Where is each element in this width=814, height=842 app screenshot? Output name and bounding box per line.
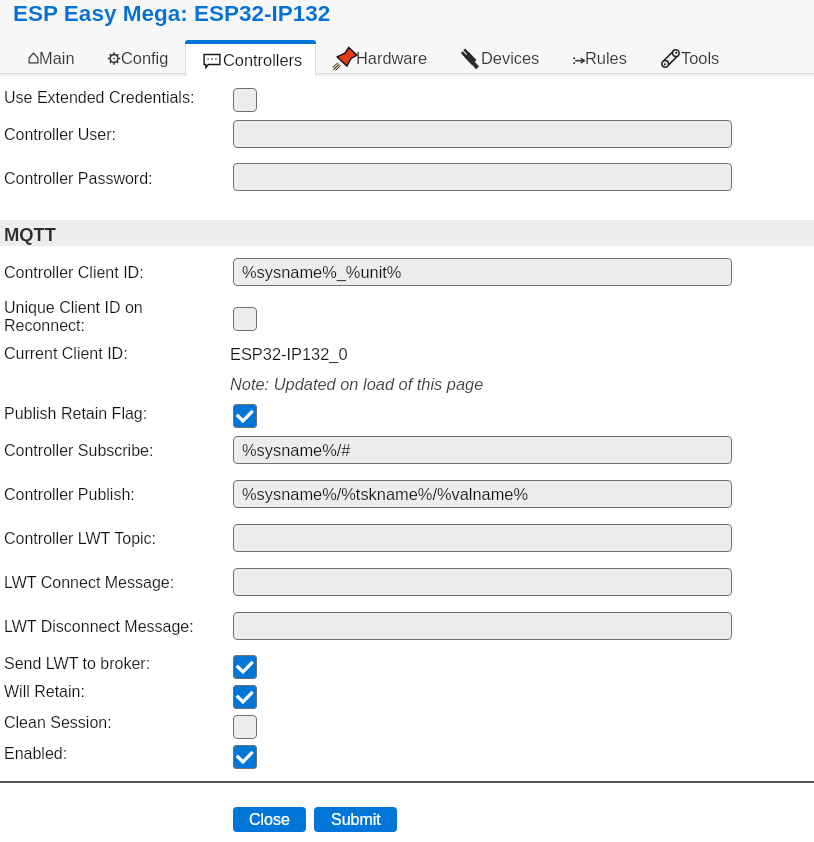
staticText: Send LWT to broker: (4, 655, 151, 673)
button[interactable]: %sysname%/%tskname%/%valname% (233, 480, 732, 508)
staticText: ESP Easy Mega: ESP32-IP132 (13, 1, 331, 26)
button[interactable]: Send LWT to broker (233, 655, 257, 679)
staticText: MQTT (4, 224, 57, 245)
staticText: Clean Session: (4, 714, 112, 732)
staticText: Will Retain: (4, 683, 85, 701)
staticText: Publish Retain Flag: (4, 405, 148, 423)
staticText: Current Client ID: (4, 345, 128, 363)
button[interactable]: Use Extended Credentials (233, 88, 257, 112)
button[interactable] (233, 120, 732, 148)
staticText: Submit (331, 811, 381, 829)
staticText: Enabled: (4, 745, 68, 763)
button[interactable]: Close (233, 807, 306, 832)
staticText: Rules (585, 49, 627, 67)
button[interactable]: Publish Retain Flag (233, 404, 257, 428)
button[interactable] (328, 41, 434, 74)
staticText: Controller User: (4, 126, 117, 144)
button[interactable] (233, 568, 732, 596)
staticText: Config (121, 49, 169, 67)
staticText: Hardware (356, 49, 428, 67)
staticText: Controller Client ID: (4, 264, 144, 282)
staticText: %sysname%/# (242, 441, 351, 459)
staticText: Reconnect: (4, 317, 85, 335)
button[interactable] (21, 41, 81, 74)
button[interactable]: %sysname%_%unit% (233, 258, 732, 286)
button[interactable] (565, 41, 636, 74)
staticText: Controller Subscribe: (4, 442, 154, 460)
staticText: Controller Publish: (4, 486, 135, 504)
staticText: ESP32-IP132_0 (230, 345, 348, 363)
button[interactable]: Submit (314, 807, 397, 832)
staticText: Unique Client ID on (4, 299, 143, 317)
staticText: Controller Password: (4, 170, 153, 188)
button[interactable] (100, 41, 175, 74)
button[interactable]: Clean Session (233, 715, 257, 739)
staticText: Controllers (223, 51, 303, 69)
staticText: Close (249, 811, 290, 829)
staticText: Tools (681, 49, 720, 67)
button[interactable] (233, 163, 732, 191)
staticText: Note: Updated on load of this page (230, 375, 484, 393)
button[interactable]: Will Retain (233, 685, 257, 709)
staticText: %sysname%/%tskname%/%valname% (242, 485, 529, 503)
staticText: LWT Connect Message: (4, 574, 175, 592)
button[interactable] (233, 612, 732, 640)
button[interactable] (233, 524, 732, 552)
button[interactable] (653, 41, 726, 74)
staticText: %sysname%_%unit% (242, 263, 402, 281)
button[interactable]: Enabled (233, 745, 257, 769)
button[interactable] (185, 40, 316, 76)
button[interactable]: %sysname%/# (233, 436, 732, 464)
staticText: Controller LWT Topic: (4, 530, 157, 548)
staticText: Use Extended Credentials: (4, 89, 195, 107)
staticText: LWT Disconnect Message: (4, 618, 194, 636)
staticText: Main (39, 49, 75, 67)
button[interactable]: Unique Client ID on Reconnect (233, 307, 257, 331)
button[interactable] (453, 41, 546, 74)
staticText: Devices (481, 49, 540, 67)
